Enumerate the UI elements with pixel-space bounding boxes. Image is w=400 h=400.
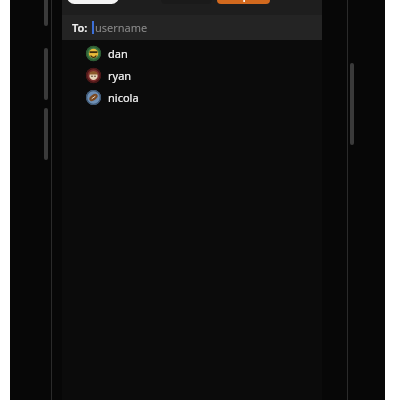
button[interactable]: Compose [217,0,270,4]
staticText: username [95,20,148,35]
button[interactable]: Private [67,0,119,4]
staticText: nicola [108,90,139,105]
button[interactable]: nicola [62,86,322,108]
button[interactable]: Mute switch [44,0,48,26]
button[interactable]: Power [350,63,354,145]
button[interactable]: dan [62,42,322,64]
button[interactable]: Volume up [44,48,48,100]
button[interactable]: Volume down [44,108,48,160]
button[interactable]: ryan [62,64,322,86]
staticText: ryan [108,68,132,83]
staticText: To: [72,20,88,35]
staticText: dan [108,46,128,61]
staticText: Compose [225,0,262,2]
button[interactable]: To: [62,15,322,40]
